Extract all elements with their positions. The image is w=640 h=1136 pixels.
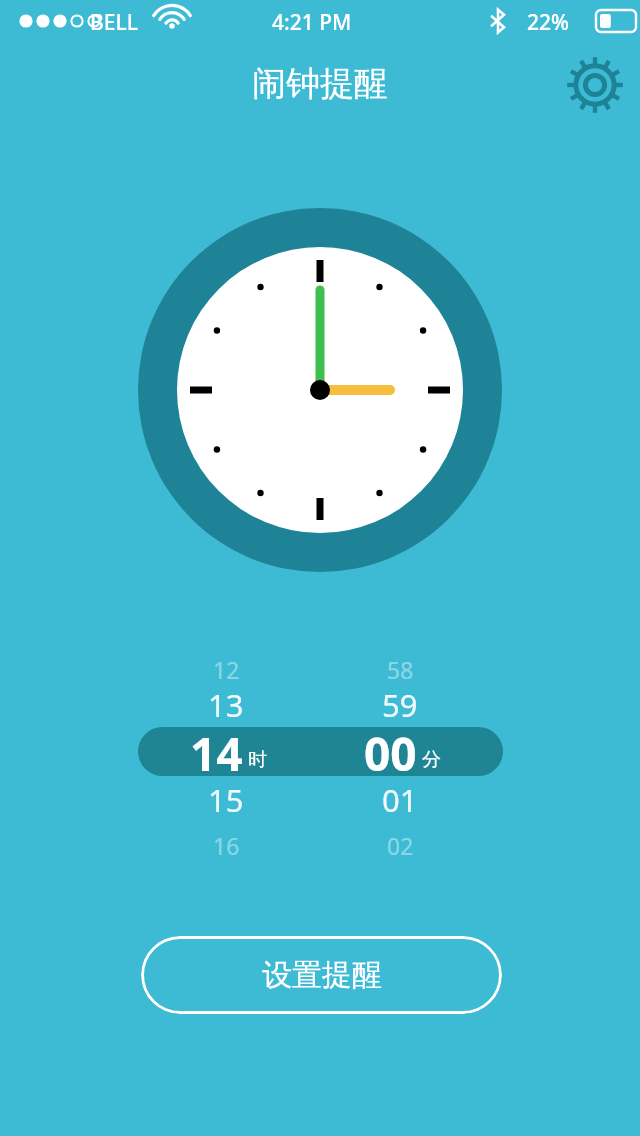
button[interactable]: Settings — [566, 56, 624, 114]
button[interactable]: 01 — [284, 779, 516, 821]
button[interactable]: 15 — [110, 779, 342, 821]
staticText: BELL — [90, 8, 138, 37]
staticText: 分 — [422, 748, 441, 772]
staticText: 13 — [208, 684, 244, 726]
button[interactable]: 13 — [110, 684, 342, 726]
staticText: 设置提醒 — [262, 956, 382, 994]
staticText: 时 — [248, 748, 267, 772]
staticText: 闹钟提醒 — [0, 62, 640, 1136]
button[interactable]: 59 — [284, 684, 516, 726]
staticText: 22% — [527, 8, 569, 37]
staticText: 01 — [382, 779, 418, 821]
staticText: 15 — [208, 779, 244, 821]
button[interactable]: 58 — [284, 648, 516, 690]
staticText: 16 — [213, 830, 240, 861]
staticText: 00 — [364, 722, 417, 778]
staticText: 58 — [387, 654, 414, 685]
button[interactable]: 00 — [284, 722, 516, 778]
button[interactable]: 02 — [284, 824, 516, 866]
button[interactable]: 14 — [110, 722, 342, 778]
staticText: 02 — [387, 830, 414, 861]
button[interactable] — [138, 727, 503, 776]
staticText: 14 — [190, 722, 243, 778]
button[interactable]: 设置提醒 — [141, 936, 502, 1014]
button[interactable]: 12 — [110, 648, 342, 690]
button[interactable]: 16 — [110, 824, 342, 866]
staticText: 4:21 PM — [272, 8, 352, 37]
staticText: 12 — [213, 654, 240, 685]
staticText: 59 — [382, 684, 418, 726]
